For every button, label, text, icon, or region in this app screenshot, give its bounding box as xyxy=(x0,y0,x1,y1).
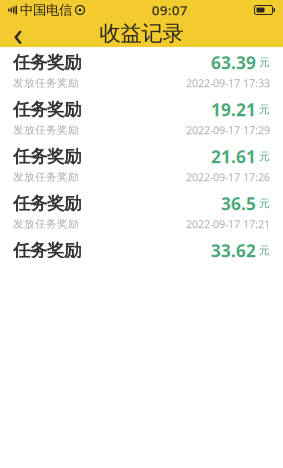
staticText: 19.21 xyxy=(211,98,256,121)
button[interactable]: 任务奖励 xyxy=(0,47,283,94)
staticText: 元 xyxy=(259,244,270,257)
staticText: 任务奖励 xyxy=(13,99,81,120)
staticText: 元 xyxy=(259,150,270,163)
staticText: 63.39 xyxy=(211,51,256,74)
staticText: 发放任务奖励 xyxy=(13,217,79,231)
staticText: 发放任务奖励 xyxy=(13,170,79,184)
staticText: 收益记录 xyxy=(99,20,183,47)
staticText: 21.61 xyxy=(211,145,256,168)
staticText: 元 xyxy=(259,56,270,69)
button[interactable]: 任务奖励 xyxy=(0,188,283,235)
staticText: 发放任务奖励 xyxy=(13,76,79,90)
staticText: 发放任务奖励 xyxy=(13,123,79,137)
staticText: 中国电信 xyxy=(20,2,72,18)
button[interactable]: 任务奖励 xyxy=(0,235,283,282)
button[interactable]: 任务奖励 xyxy=(0,141,283,188)
staticText: 任务奖励 xyxy=(13,240,81,261)
staticText: ‹ xyxy=(13,12,23,55)
staticText: 2022-09-17 17:21 xyxy=(186,217,270,231)
staticText: 元 xyxy=(259,197,270,210)
staticText: 任务奖励 xyxy=(13,146,81,167)
staticText: 元 xyxy=(259,103,270,116)
staticText: 2022-09-17 17:26 xyxy=(186,170,270,184)
staticText: 2022-09-17 17:33 xyxy=(186,76,270,90)
staticText: 2022-09-17 17:29 xyxy=(186,123,270,137)
staticText: 09:07 xyxy=(152,1,188,19)
button[interactable]: 任务奖励 xyxy=(0,94,283,141)
staticText: 任务奖励 xyxy=(13,193,81,214)
staticText: 任务奖励 xyxy=(13,52,81,73)
button[interactable]: 返回 xyxy=(0,20,36,47)
staticText: 36.5 xyxy=(221,192,256,215)
staticText: 33.62 xyxy=(211,239,256,262)
